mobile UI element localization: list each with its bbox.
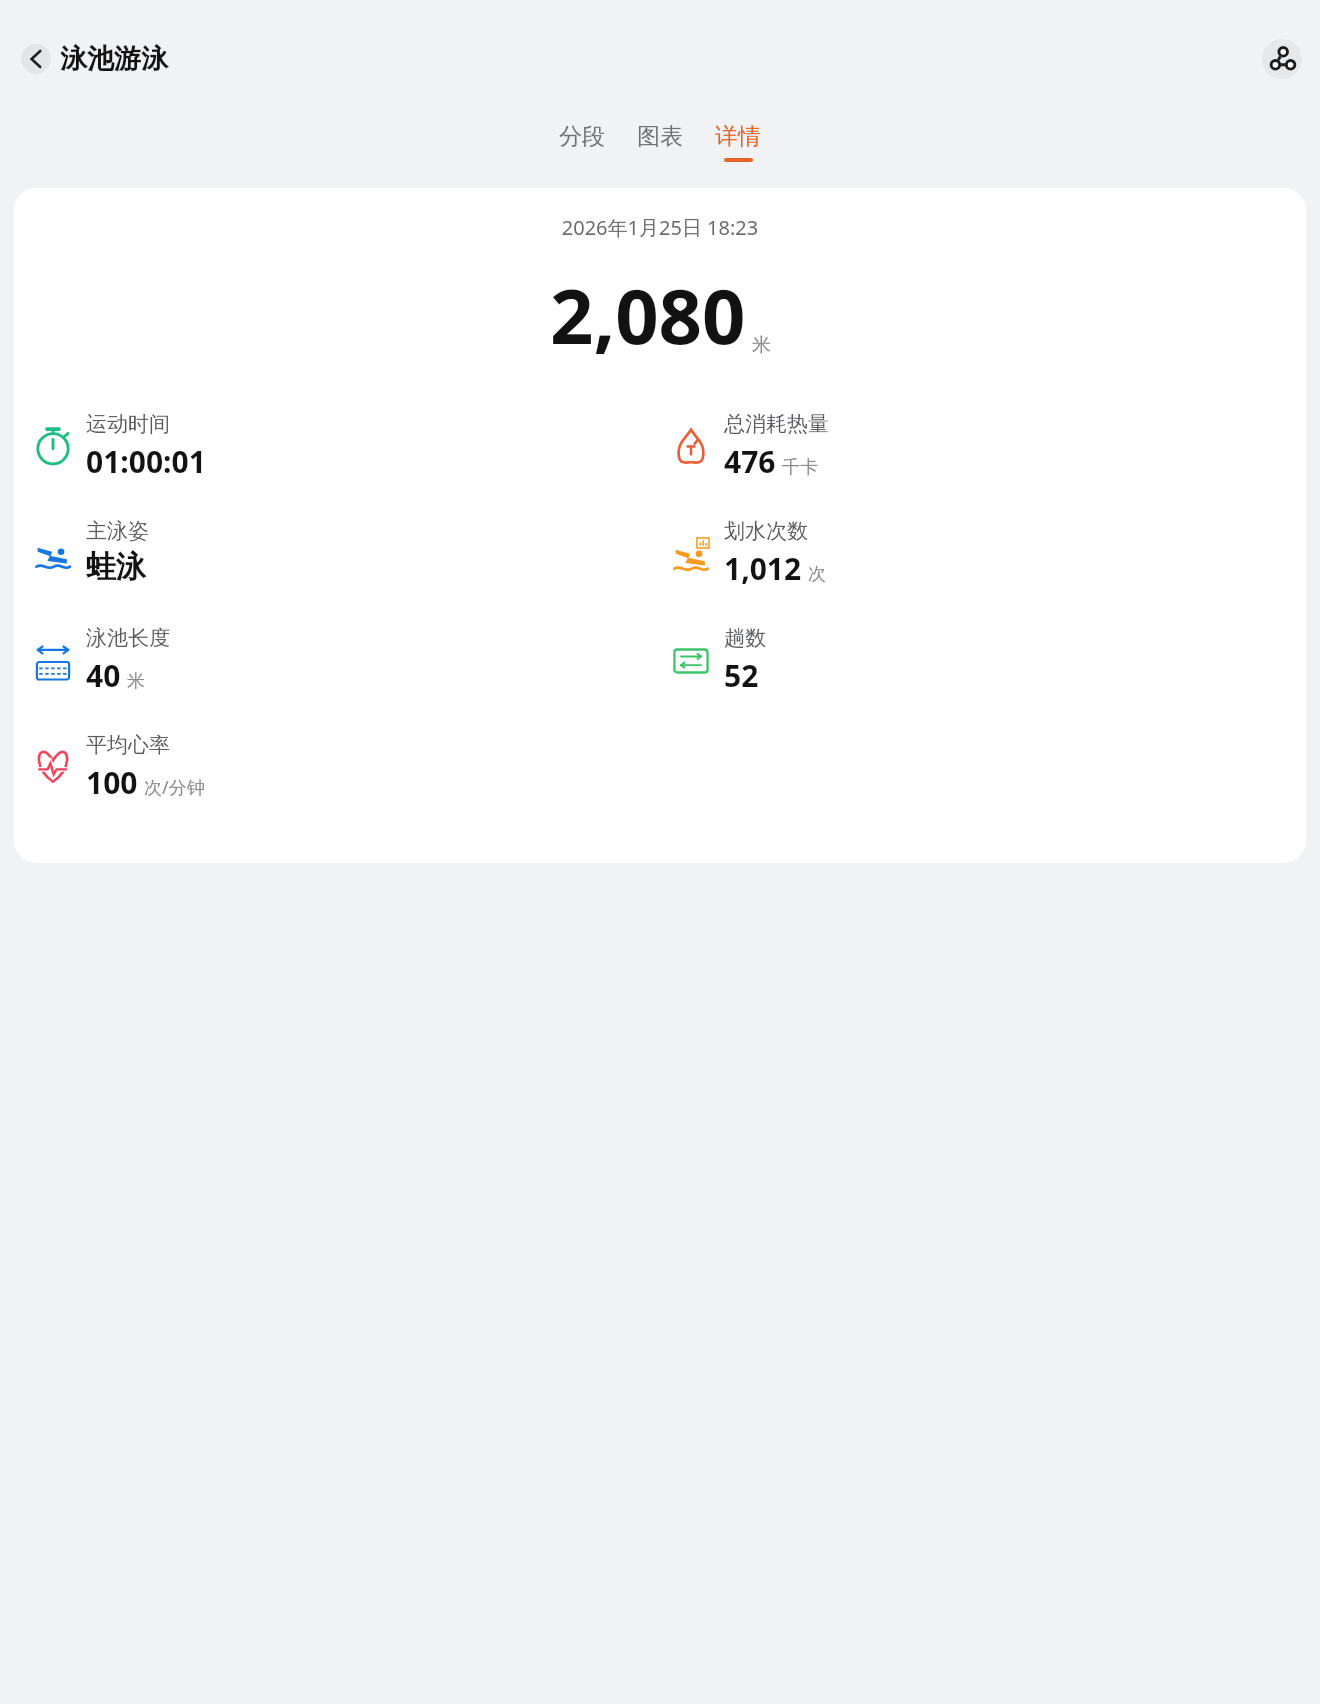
staticText: 米 [127,670,145,693]
button[interactable]: 总消耗热量 [668,411,829,482]
staticText: 52 [724,655,759,696]
staticText: 次/分钟 [144,775,205,800]
button[interactable]: 平均心率 [30,732,205,803]
staticText: 泳池游泳 [60,42,168,76]
staticText: 详情 [715,122,761,151]
button[interactable]: 详情 [709,118,767,166]
staticText: 蛙泳 [86,548,146,586]
staticText: 趟数 [724,625,766,651]
button[interactable]: 运动时间 [30,411,206,482]
button[interactable]: Back [21,44,51,74]
staticText: 划水次数 [724,518,808,544]
staticText: 运动时间 [86,411,170,437]
staticText: 泳池长度 [86,625,170,651]
staticText: 次 [808,563,826,586]
staticText: 2026年1月25日 18:23 [14,214,1306,241]
staticText: 2,080 [550,263,746,367]
button[interactable]: 分段 [553,118,611,166]
staticText: 米 [752,333,771,357]
button[interactable]: 图表 [631,118,689,166]
staticText: 100 [86,762,138,803]
staticText: 1,012 [724,548,802,589]
button[interactable]: 趟数 [668,625,766,696]
button[interactable]: Share [1262,39,1302,79]
staticText: 图表 [637,122,683,151]
staticText: 01:00:01 [86,441,206,482]
staticText: 主泳姿 [86,518,149,544]
staticText: 千卡 [782,456,818,479]
staticText: 总消耗热量 [724,411,829,437]
staticText: 40 [86,655,121,696]
staticText: 476 [724,441,776,482]
staticText: 平均心率 [86,732,170,758]
button[interactable]: 主泳姿 [30,518,149,586]
button[interactable]: 划水次数 [668,518,826,589]
staticText: 分段 [559,122,605,151]
button[interactable]: 泳池长度 [30,625,170,696]
